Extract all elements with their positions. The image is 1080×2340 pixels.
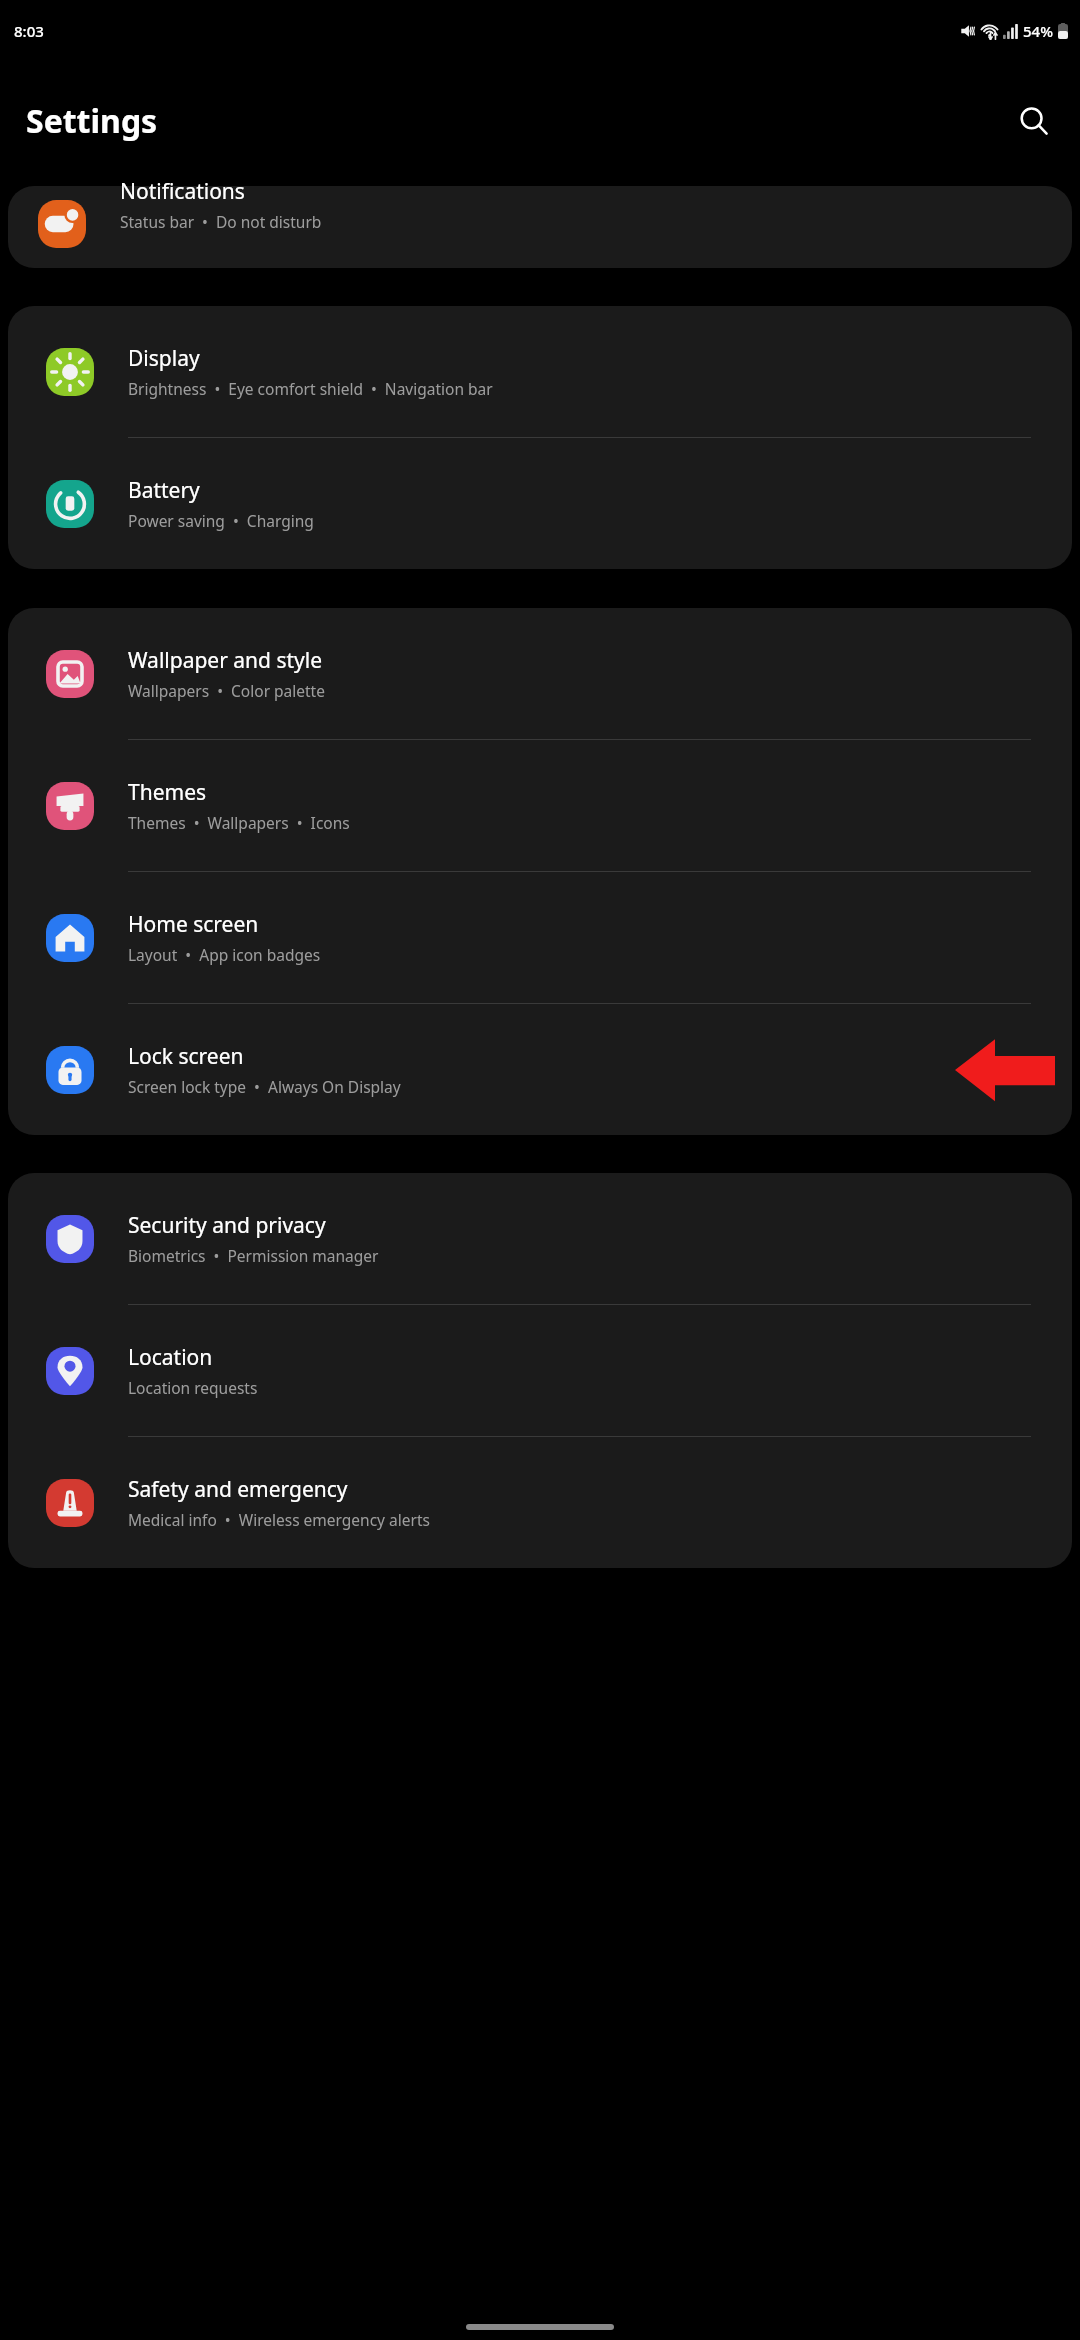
staticText: Display [128, 344, 200, 373]
staticText: Wallpaper and style [128, 646, 323, 675]
staticText: Status bar • Do not disturb [120, 211, 322, 232]
button[interactable]: Home screen [8, 872, 1072, 1003]
button[interactable]: Themes [8, 740, 1072, 871]
staticText: Location [128, 1343, 213, 1372]
staticText: Lock screen [128, 1042, 244, 1071]
button[interactable]: Security and privacy [8, 1173, 1072, 1304]
staticText: 8:03 [14, 21, 44, 41]
button[interactable]: Battery [8, 438, 1072, 569]
staticText: Biometrics • Permission manager [128, 1245, 379, 1266]
button[interactable]: Location [8, 1305, 1072, 1436]
staticText: Home screen [128, 910, 259, 939]
staticText: Safety and emergency [128, 1475, 348, 1504]
button[interactable]: Notifications [0, 180, 1080, 268]
button[interactable]: Search [1006, 93, 1062, 149]
staticText: 54% [1023, 21, 1053, 41]
staticText: Location requests [128, 1377, 258, 1398]
staticText: Settings [26, 99, 158, 143]
staticText: Battery [128, 476, 200, 505]
staticText: Themes • Wallpapers • Icons [128, 812, 350, 833]
staticText: Wallpapers • Color palette [128, 680, 325, 701]
staticText: Layout • App icon badges [128, 944, 321, 965]
staticText: Themes [128, 778, 207, 807]
button[interactable]: Wallpaper and style [8, 608, 1072, 739]
staticText: Notifications [120, 177, 245, 206]
button[interactable]: Safety and emergency [8, 1437, 1072, 1568]
staticText: Brightness • Eye comfort shield • Naviga… [128, 378, 493, 399]
button[interactable]: Lock screen [8, 1004, 1072, 1135]
staticText: Screen lock type • Always On Display [128, 1076, 401, 1097]
staticText: Medical info • Wireless emergency alerts [128, 1509, 430, 1530]
staticText: Security and privacy [128, 1211, 326, 1240]
button[interactable]: Display [8, 306, 1072, 437]
staticText: Power saving • Charging [128, 510, 314, 531]
